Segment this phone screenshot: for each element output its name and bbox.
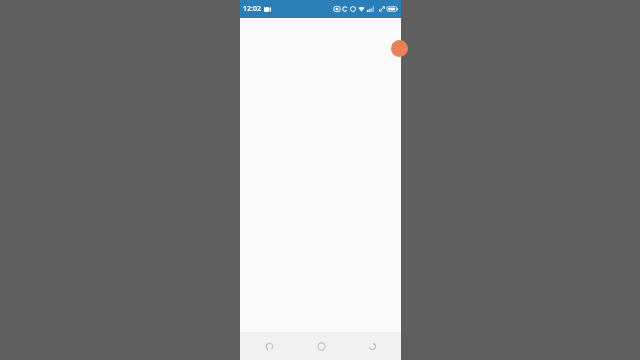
button[interactable]: Back	[254, 332, 284, 360]
button[interactable]: Add	[391, 40, 408, 57]
staticText: 12:02	[243, 4, 261, 14]
button[interactable]: Recents	[357, 332, 387, 360]
button[interactable]: Home	[306, 332, 336, 360]
